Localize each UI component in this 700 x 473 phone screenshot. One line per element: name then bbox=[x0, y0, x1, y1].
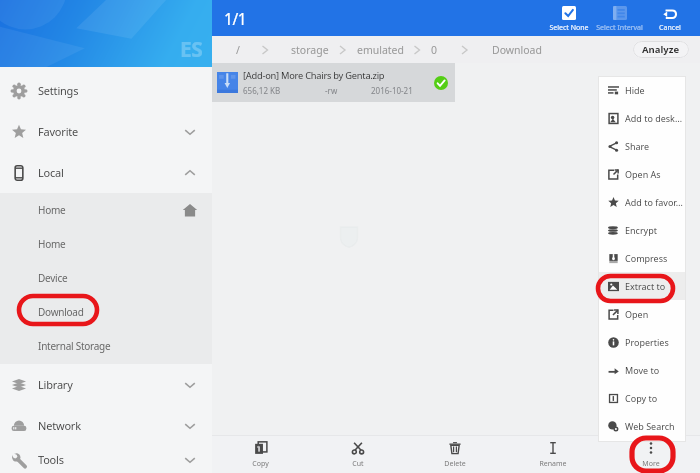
staticText: Internal Storage bbox=[38, 339, 111, 353]
staticText: Home bbox=[38, 237, 66, 251]
staticText: Local bbox=[38, 165, 64, 180]
staticText: Cancel bbox=[659, 23, 681, 33]
button[interactable]: Move to bbox=[598, 356, 686, 384]
button[interactable]: Encrypt bbox=[598, 216, 686, 244]
staticText: Compress bbox=[625, 252, 668, 264]
button[interactable]: Device bbox=[0, 261, 212, 295]
button[interactable]: 0 bbox=[431, 43, 438, 57]
staticText: Home bbox=[38, 203, 66, 217]
staticText: Web Search bbox=[625, 420, 675, 432]
button[interactable]: Share bbox=[598, 132, 686, 160]
staticText: Extract to bbox=[625, 280, 666, 292]
button[interactable]: Hide bbox=[598, 76, 686, 104]
button[interactable]: Local bbox=[0, 152, 212, 193]
staticText: Cut bbox=[352, 459, 364, 469]
staticText: Add to desk… bbox=[625, 112, 683, 124]
staticText: Delete bbox=[444, 459, 466, 469]
button[interactable]: Rename bbox=[504, 436, 602, 473]
button[interactable]: Select Interval bbox=[593, 0, 646, 36]
button[interactable]: / bbox=[236, 43, 240, 57]
button[interactable]: storage bbox=[291, 43, 329, 57]
staticText: Rename bbox=[539, 459, 567, 469]
button[interactable]: Tools bbox=[0, 446, 212, 473]
staticText: Open As bbox=[625, 168, 661, 180]
button[interactable]: Cut bbox=[309, 436, 406, 473]
staticText: Tools bbox=[38, 452, 64, 467]
staticText: Download bbox=[38, 305, 84, 319]
staticText: Device bbox=[38, 271, 68, 285]
button[interactable]: Analyze bbox=[633, 41, 689, 58]
button[interactable]: Home bbox=[0, 193, 212, 227]
button[interactable]: Open bbox=[598, 300, 686, 328]
staticText: Encrypt bbox=[625, 224, 657, 236]
button[interactable]: Properties bbox=[598, 328, 686, 356]
button[interactable]: Network bbox=[0, 405, 212, 446]
button[interactable]: Cancel bbox=[646, 0, 694, 36]
button[interactable]: Web Search bbox=[598, 412, 686, 440]
button[interactable]: Copy bbox=[212, 436, 309, 473]
button[interactable]: Add to desk… bbox=[598, 104, 686, 132]
button[interactable]: Delete bbox=[406, 436, 504, 473]
staticText: Favorite bbox=[38, 124, 79, 139]
button[interactable]: Open As bbox=[598, 160, 686, 188]
staticText: Network bbox=[38, 418, 81, 433]
staticText: 2016-10-21 bbox=[371, 85, 413, 96]
button[interactable]: Settings bbox=[0, 70, 212, 111]
button[interactable]: Select None bbox=[545, 0, 593, 36]
button[interactable]: Extract to bbox=[598, 272, 686, 300]
button[interactable]: Favorite bbox=[0, 111, 212, 152]
staticText: Properties bbox=[625, 336, 669, 348]
button[interactable]: Library bbox=[0, 364, 212, 405]
button[interactable]: Download bbox=[0, 295, 212, 329]
staticText: ES bbox=[180, 35, 203, 64]
staticText: Share bbox=[625, 140, 650, 152]
staticText: 656,12 KB bbox=[243, 85, 281, 96]
staticText: [Add-on] More Chairs by Genta.zip bbox=[243, 69, 385, 82]
button[interactable]: Internal Storage bbox=[0, 329, 212, 363]
staticText: Add to favor… bbox=[625, 196, 683, 208]
staticText: Hide bbox=[625, 84, 645, 96]
staticText: Copy to bbox=[625, 392, 658, 404]
button[interactable]: Download bbox=[492, 43, 542, 57]
button[interactable]: Copy to bbox=[598, 384, 686, 412]
staticText: Select None bbox=[549, 23, 589, 33]
staticText: Settings bbox=[38, 83, 79, 98]
staticText: -rw bbox=[325, 85, 338, 96]
button[interactable]: emulated bbox=[357, 43, 404, 57]
button[interactable]: Compress bbox=[598, 244, 686, 272]
staticText: Move to bbox=[625, 364, 660, 376]
button[interactable]: More bbox=[602, 436, 700, 473]
button[interactable]: Add to favor… bbox=[598, 188, 686, 216]
staticText: Open bbox=[625, 308, 649, 320]
staticText: Library bbox=[38, 377, 73, 392]
staticText: Analyze bbox=[642, 43, 680, 56]
staticText: More bbox=[642, 459, 660, 469]
button[interactable]: Home bbox=[0, 227, 212, 261]
staticText: Copy bbox=[252, 459, 269, 469]
staticText: Select Interval bbox=[596, 23, 643, 33]
staticText: 1/1 bbox=[224, 8, 247, 29]
button[interactable]: [Add-on] More Chairs by Genta.zip bbox=[212, 63, 455, 102]
